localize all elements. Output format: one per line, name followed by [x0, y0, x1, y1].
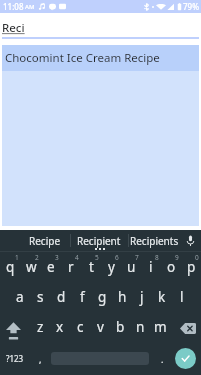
staticText: ?123	[6, 353, 24, 364]
staticText: 9	[175, 253, 179, 262]
staticText: 0	[195, 253, 199, 262]
button[interactable]: f	[72, 282, 92, 312]
button[interactable]: ?123	[0, 342, 29, 375]
button[interactable]: Backspace	[170, 312, 201, 342]
button[interactable]: v	[90, 312, 110, 342]
staticText: z	[37, 318, 44, 336]
staticText: g	[98, 288, 107, 306]
button[interactable]: i	[141, 252, 161, 282]
button[interactable]: .	[149, 342, 175, 375]
button[interactable]: o	[161, 252, 181, 282]
button[interactable]: Recipients	[128, 230, 180, 251]
button[interactable]: ,	[29, 342, 51, 375]
staticText: y	[108, 258, 115, 276]
staticText: d	[57, 288, 66, 306]
button[interactable]: l	[172, 282, 192, 312]
staticText: Recipe	[29, 234, 61, 248]
staticText: x	[56, 318, 64, 336]
staticText: m	[154, 318, 167, 336]
button[interactable]: p	[181, 252, 201, 282]
button[interactable]: y	[101, 252, 121, 282]
button[interactable]: s	[30, 282, 51, 312]
staticText: w	[26, 258, 37, 276]
button[interactable]: n	[130, 312, 150, 342]
staticText: Recipient	[77, 234, 121, 248]
button[interactable]: Shift	[0, 312, 30, 342]
button[interactable]: m	[150, 312, 170, 342]
button[interactable]: k	[152, 282, 172, 312]
button[interactable]: w	[21, 252, 41, 282]
button[interactable]: t	[81, 252, 101, 282]
staticText: ,	[39, 353, 42, 365]
button[interactable]: r	[61, 252, 81, 282]
button[interactable]: j	[132, 282, 152, 312]
button[interactable]: a	[9, 282, 30, 312]
button[interactable]: e	[41, 252, 61, 282]
staticText: t	[89, 258, 94, 276]
button[interactable]: q	[0, 252, 21, 282]
button[interactable]: g	[92, 282, 112, 312]
staticText: 8	[155, 253, 159, 262]
staticText: l	[180, 288, 184, 306]
button[interactable]: z	[30, 312, 50, 342]
staticText: Chocomint Ice Cream Recipe	[5, 50, 160, 66]
button[interactable]: c	[70, 312, 90, 342]
button[interactable]: h	[112, 282, 132, 312]
staticText: c	[77, 318, 84, 336]
staticText: 3	[55, 253, 59, 262]
staticText: 5	[95, 253, 99, 262]
staticText: b	[116, 318, 125, 336]
staticText: i	[149, 258, 153, 276]
staticText: 11:08	[3, 1, 24, 12]
button[interactable]: Enter	[175, 348, 196, 369]
staticText: p	[187, 258, 196, 276]
staticText: k	[158, 288, 166, 306]
button[interactable]: Recipe	[20, 230, 70, 251]
button[interactable]: d	[51, 282, 72, 312]
staticText: s	[37, 288, 44, 306]
staticText: 79%	[183, 1, 199, 12]
staticText: 4	[75, 253, 79, 262]
staticText: 2	[35, 253, 39, 262]
staticText: v	[97, 318, 104, 336]
button[interactable]: Recipient	[70, 230, 128, 251]
staticText: 1	[15, 253, 19, 262]
button[interactable]: b	[110, 312, 130, 342]
staticText: u	[127, 258, 136, 276]
staticText: o	[167, 258, 176, 276]
staticText: a	[16, 288, 24, 306]
button[interactable]: Chocomint Ice Cream Recipe	[2, 45, 199, 71]
staticText: q	[6, 258, 15, 276]
staticText: j	[140, 288, 144, 306]
staticText: 7	[135, 253, 139, 262]
staticText: Reci	[2, 20, 25, 36]
button[interactable]: x	[50, 312, 70, 342]
staticText: AM	[25, 3, 35, 11]
staticText: h	[118, 288, 127, 306]
staticText: .	[161, 353, 164, 365]
staticText: 6	[115, 253, 119, 262]
staticText: Recipients	[130, 234, 179, 248]
button[interactable]: Voice input	[180, 230, 201, 251]
button[interactable]: u	[121, 252, 141, 282]
staticText: n	[136, 318, 145, 336]
staticText: f	[80, 288, 85, 306]
staticText: r	[68, 258, 74, 276]
staticText: e	[47, 258, 55, 276]
